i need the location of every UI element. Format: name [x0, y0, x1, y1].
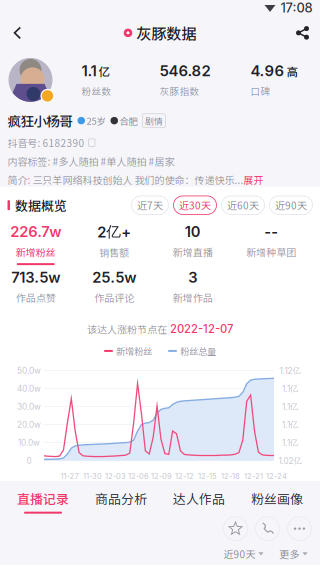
staticText: 新增直播: [173, 245, 213, 259]
button[interactable]: 近90天: [223, 547, 263, 561]
staticText: 546.82: [159, 62, 210, 80]
staticText: 疯狂小杨哥: [7, 111, 72, 130]
button[interactable]: 近7天: [131, 196, 168, 214]
staticText: 近30天: [179, 198, 211, 212]
staticText: 1.12亿: [279, 365, 300, 376]
staticText: 亿: [98, 63, 109, 79]
staticText: 数据概览: [15, 196, 67, 214]
button[interactable]: 2亿+: [75, 222, 153, 265]
staticText: 内容标签: #多人随拍 #单人随拍 #居家: [7, 154, 174, 168]
button[interactable]: 直播记录: [4, 489, 82, 514]
staticText: 直播记录: [17, 489, 69, 508]
staticText: 达人作品: [173, 489, 225, 508]
staticText: 新增粉丝: [16, 245, 56, 259]
staticText: 粉丝总量: [180, 344, 216, 358]
staticText: 抖音号: 6182390: [7, 135, 84, 150]
staticText: 226.7w: [10, 223, 61, 241]
staticText: 12-12: [175, 472, 194, 481]
button[interactable]: 商品分析: [82, 489, 160, 514]
staticText: 粉丝数: [81, 84, 111, 98]
staticText: 11-27: [60, 472, 78, 481]
staticText: 灰豚数据: [136, 22, 196, 44]
button[interactable]: 25.5w: [75, 268, 153, 311]
staticText: 1.1亿: [282, 401, 298, 412]
staticText: 30.0w: [17, 402, 41, 412]
staticText: 12-18: [221, 472, 240, 481]
staticText: --: [264, 223, 278, 241]
staticText: 展开: [243, 172, 263, 187]
staticText: 该达人涨粉节点在: [87, 322, 167, 336]
button[interactable]: 3: [153, 268, 232, 311]
staticText: 40.0w: [17, 384, 41, 394]
staticText: 50.0w: [17, 366, 41, 376]
staticText: 新增作品: [173, 290, 213, 305]
staticText: 近7天: [137, 198, 163, 212]
staticText: 合肥: [119, 114, 137, 127]
button[interactable]: Favorite: [223, 517, 247, 541]
staticText: 17:08: [280, 0, 312, 16]
staticText: 近90天: [275, 198, 307, 212]
staticText: 1.02亿: [278, 455, 301, 466]
staticText: 2022-12-07: [170, 322, 233, 336]
button[interactable]: 更多: [263, 547, 307, 561]
staticText: 简介: 三只羊网络科技创始人 我们的使命：传递快乐...: [7, 172, 243, 187]
staticText: 新增粉丝: [116, 344, 152, 358]
staticText: 25.5w: [92, 268, 136, 286]
button[interactable]: 10: [153, 223, 232, 265]
staticText: 20.0w: [17, 420, 41, 430]
staticText: 12-24: [266, 472, 287, 481]
staticText: 4.96: [250, 62, 284, 80]
staticText: 3: [188, 268, 197, 286]
staticText: 12-03: [105, 472, 126, 481]
staticText: 11-30: [83, 472, 102, 481]
button[interactable]: Call: [255, 517, 279, 541]
staticText: 10.0w: [18, 438, 40, 448]
staticText: 1.1: [81, 62, 96, 80]
staticText: 12-09: [151, 472, 172, 481]
button[interactable]: More: [287, 517, 311, 541]
staticText: 销售额: [99, 245, 129, 259]
button[interactable]: 近90天: [269, 196, 312, 214]
button[interactable]: Back: [1, 19, 33, 47]
staticText: 粉丝画像: [251, 489, 303, 508]
staticText: 713.5w: [11, 268, 60, 286]
staticText: 1.1亿: [282, 419, 298, 430]
staticText: 灰豚指数: [159, 84, 199, 98]
staticText: 作品点赞: [16, 290, 56, 305]
staticText: 0: [26, 456, 31, 466]
button[interactable]: 粉丝画像: [238, 489, 316, 514]
staticText: 12-21: [244, 472, 263, 481]
staticText: 1.1亿: [282, 437, 298, 448]
button[interactable]: 近60天: [221, 196, 264, 214]
staticText: 2亿+: [97, 222, 131, 241]
staticText: 12-15: [198, 472, 217, 481]
button[interactable]: Share: [286, 19, 318, 47]
staticText: 更多: [279, 547, 299, 561]
staticText: 剧情: [145, 114, 163, 127]
button[interactable]: 713.5w: [0, 268, 75, 311]
staticText: 商品分析: [95, 489, 147, 508]
staticText: 新增种草团: [246, 245, 296, 259]
button[interactable]: 近30天: [173, 196, 216, 214]
staticText: 10: [185, 223, 201, 241]
staticText: 25岁: [86, 114, 105, 127]
staticText: 12-06: [128, 472, 149, 481]
staticText: 近60天: [227, 198, 259, 212]
staticText: 高: [286, 63, 297, 79]
staticText: 口碑: [250, 84, 270, 98]
button[interactable]: 达人作品: [160, 489, 238, 514]
staticText: 1.1亿: [282, 383, 298, 394]
staticText: 作品评论: [94, 290, 134, 305]
button[interactable]: 226.7w: [0, 223, 75, 265]
staticText: 近90天: [223, 547, 255, 561]
button[interactable]: --: [232, 223, 310, 265]
